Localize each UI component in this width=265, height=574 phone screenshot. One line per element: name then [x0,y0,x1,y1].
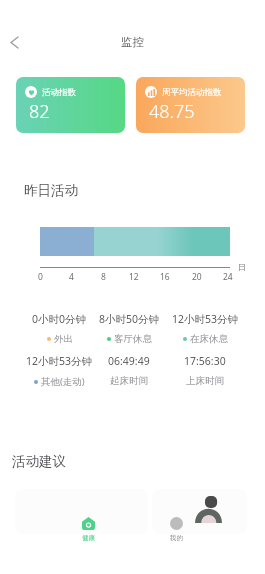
staticText: 周平均活动指数 [162,87,222,98]
staticText: 上床时间 [186,375,224,387]
staticText: 20 [192,271,202,283]
staticText: 昨日活动 [24,182,78,199]
staticText: 4 [69,271,74,283]
staticText: 我的 [170,534,183,542]
button[interactable]: Profile [150,513,202,553]
staticText: 起床时间 [110,375,148,387]
staticText: 17:56:30 [184,354,226,368]
staticText: 客厅休息 [114,333,152,345]
button[interactable]: 周平均活动指数 [136,77,245,133]
other: Profile [170,517,183,530]
staticText: 82 [29,99,50,124]
staticText: 06:49:49 [108,354,150,368]
staticText: 活动指数 [42,87,76,98]
staticText: 8 [101,271,106,283]
staticText: 0 [38,271,43,283]
button[interactable] [152,489,247,534]
staticText: 8小时50分钟 [99,312,160,326]
staticText: 16 [160,271,170,283]
button[interactable]: Back [1,29,28,56]
staticText: 其他(走动) [41,375,85,388]
staticText: 24 [223,271,233,283]
button[interactable]: Health [62,513,114,553]
staticText: 日 [238,262,246,272]
staticText: 外出 [54,333,73,345]
staticText: 48.75 [149,99,195,124]
staticText: 健康 [82,534,95,542]
staticText: 监控 [121,35,144,49]
staticText: 12 [129,271,139,283]
button[interactable]: 活动指数 [16,77,125,133]
staticText: 12小时53分钟 [172,312,239,326]
staticText: 0小时0分钟 [32,312,87,326]
staticText: 12小时53分钟 [26,354,93,368]
other: Health [82,517,95,530]
staticText: 在床休息 [190,333,228,345]
button[interactable] [15,489,148,534]
staticText: 活动建议 [12,453,66,470]
